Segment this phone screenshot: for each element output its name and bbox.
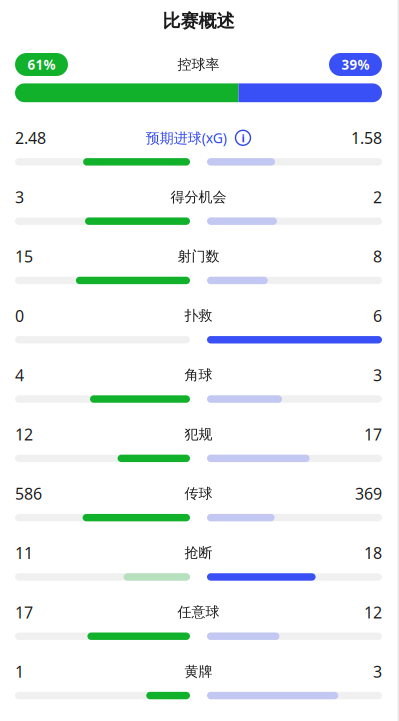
staticText: 61% <box>27 55 55 74</box>
staticText: 3 <box>373 364 382 386</box>
staticText: 369 <box>355 483 382 504</box>
staticText: 8 <box>373 245 382 267</box>
staticText: 6 <box>373 305 382 327</box>
staticText: 预期进球(xG) <box>146 128 227 147</box>
staticText: i <box>241 130 244 145</box>
staticText: 犯规 <box>184 425 212 443</box>
staticText: 得分机会 <box>170 188 226 206</box>
staticText: 2 <box>373 186 382 208</box>
staticText: 15 <box>15 245 33 267</box>
staticText: 586 <box>15 483 42 504</box>
staticText: 17 <box>364 423 382 445</box>
staticText: 18 <box>364 542 382 564</box>
staticText: 2.48 <box>15 127 46 149</box>
button[interactable]: 39% <box>329 53 382 76</box>
staticText: 1.58 <box>351 127 382 149</box>
staticText: 12 <box>364 601 382 623</box>
staticText: 黄牌 <box>184 663 212 680</box>
staticText: 扑救 <box>184 307 212 324</box>
staticText: 3 <box>373 661 382 682</box>
staticText: 0 <box>15 305 24 327</box>
staticText: 任意球 <box>177 603 219 621</box>
staticText: 39% <box>341 55 369 74</box>
staticText: 比赛概述 <box>162 10 234 32</box>
staticText: 角球 <box>184 366 212 384</box>
staticText: 抢断 <box>184 544 212 562</box>
button[interactable]: 预期进球(xG) <box>146 129 251 147</box>
staticText: 传球 <box>184 485 212 502</box>
staticText: 4 <box>15 364 24 386</box>
staticText: 12 <box>15 423 33 445</box>
staticText: 1 <box>15 661 24 682</box>
staticText: 17 <box>15 601 33 623</box>
staticText: 11 <box>15 542 33 564</box>
staticText: 控球率 <box>177 56 219 73</box>
staticText: 3 <box>15 186 24 208</box>
button[interactable]: 61% <box>15 53 68 76</box>
staticText: 射门数 <box>177 248 219 265</box>
